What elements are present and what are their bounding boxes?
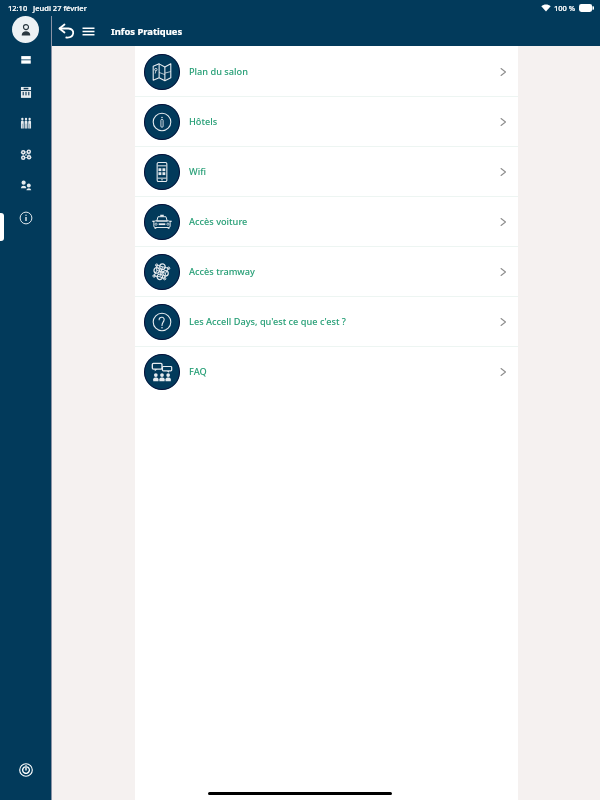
staticText: Les Accell Days, qu'est ce que c'est ?: [189, 315, 346, 328]
staticText: Wifi: [189, 165, 206, 178]
button[interactable]: Profile: [12, 16, 39, 43]
staticText: Accès voiture: [189, 215, 248, 228]
staticText: Accès tramway: [189, 265, 255, 278]
button[interactable]: Actualités: [13, 47, 38, 72]
button[interactable]: Accès voiture: [135, 197, 518, 247]
button[interactable]: Menu: [75, 18, 101, 44]
staticText: FAQ: [189, 365, 207, 378]
button[interactable]: Agenda: [13, 79, 38, 104]
staticText: Infos Pratiques: [111, 25, 183, 38]
button[interactable]: FAQ: [135, 347, 518, 397]
staticText: Plan du salon: [189, 65, 248, 78]
button[interactable]: Wifi: [135, 147, 518, 197]
button[interactable]: Retour: [53, 17, 81, 45]
button[interactable]: Accès tramway: [135, 247, 518, 297]
button[interactable]: Contacts: [13, 173, 38, 198]
button[interactable]: Déconnexion: [13, 757, 39, 783]
button[interactable]: Réseau: [13, 142, 38, 167]
staticText: 100 %: [554, 3, 576, 13]
staticText: 12:10 Jeudi 27 février: [8, 3, 87, 13]
button[interactable]: Infos: [13, 205, 38, 230]
button[interactable]: Plan du salon: [135, 47, 518, 97]
button[interactable]: Exposants: [13, 110, 38, 135]
button[interactable]: Les Accell Days, qu'est ce que c'est ?: [135, 297, 518, 347]
button[interactable]: Hôtels: [135, 97, 518, 147]
staticText: Hôtels: [189, 115, 218, 128]
